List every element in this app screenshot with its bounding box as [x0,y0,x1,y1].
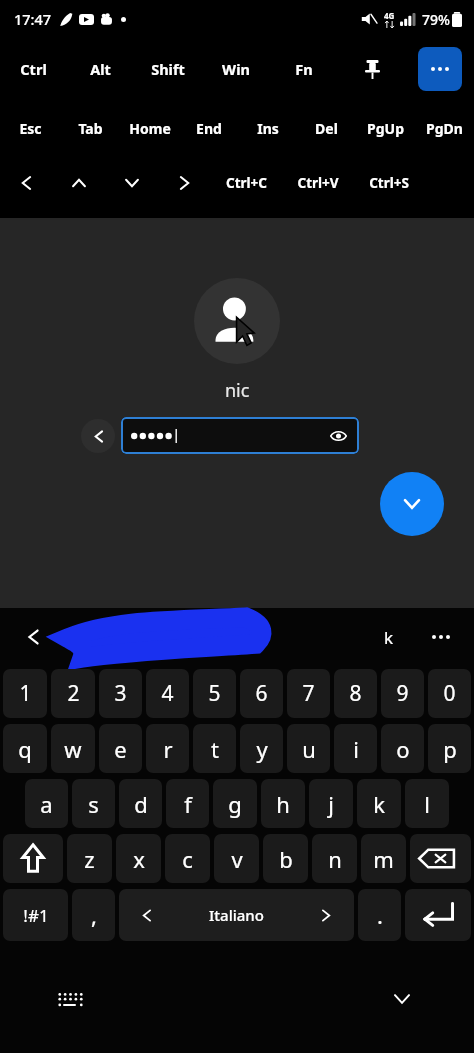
button[interactable]: Italiano [119,889,354,941]
staticText: PgUp [367,119,404,138]
button[interactable]: Switch keyboard [52,981,88,1017]
staticText: h [62,626,73,649]
button[interactable]: End [179,100,238,156]
button[interactable]: Win [202,38,270,100]
staticText: PgDn [426,119,463,138]
staticText: Tab [78,119,103,138]
button[interactable]: 6 [240,669,283,718]
staticText: u [302,734,316,764]
staticText: a [40,789,53,819]
button[interactable]: s [72,779,115,828]
button[interactable]: 2 [51,669,95,718]
button[interactable]: w [51,724,95,773]
button[interactable]: Tab [60,100,120,156]
button[interactable]: Hide keyboard [382,979,422,1019]
button[interactable]: 5 [193,669,236,718]
staticText: 3 [114,679,127,708]
staticText: y [256,734,268,764]
button[interactable]: Previous user [81,419,115,453]
button[interactable]: 8 [334,669,377,718]
button[interactable]: 3 [99,669,142,718]
button[interactable]: h [62,608,266,666]
button[interactable]: Show password [327,425,349,447]
button[interactable]: q [3,724,47,773]
button[interactable]: Submit [380,472,444,536]
button[interactable]: x [116,834,161,883]
button[interactable]: Esc [0,100,60,156]
button[interactable]: i [334,724,377,773]
staticText: 7 [302,679,315,708]
button[interactable]: 9 [381,669,424,718]
staticText: Alt [90,59,111,79]
button[interactable]: l [405,779,449,828]
button[interactable]: v [214,834,259,883]
button[interactable]: t [193,724,236,773]
button[interactable]: k [357,779,401,828]
button[interactable]: PgUp [356,100,415,156]
staticText: 79% [422,10,450,29]
button[interactable]: Shift [134,38,202,100]
button[interactable]: f [166,779,209,828]
staticText: 5 [208,679,221,708]
staticText: Home [129,119,171,138]
button[interactable]: b [263,834,308,883]
button[interactable]: 1 [3,669,47,718]
button[interactable]: a [25,779,68,828]
button[interactable]: h [261,779,305,828]
staticText: 6 [255,679,268,708]
button[interactable]: Fn [270,38,338,100]
staticText: Ctrl [20,59,47,79]
button[interactable]: c [165,834,210,883]
staticText: q [18,734,32,764]
button[interactable]: Ctrl+S [353,156,424,210]
staticText: w [64,734,82,764]
button[interactable]: !#1 [3,889,68,941]
button[interactable]: e [99,724,142,773]
button[interactable]: z [67,834,112,883]
button[interactable]: p [428,724,471,773]
staticText: 8 [349,679,362,708]
button[interactable]: More keys [418,47,462,91]
staticText: o [396,734,410,764]
button[interactable]: PgDn [415,100,474,156]
staticText: Esc [19,119,42,138]
button[interactable]: 0 [428,669,471,718]
button[interactable]: g [213,779,257,828]
staticText: l [424,789,430,819]
button[interactable]: n [312,834,357,883]
button[interactable]: m [361,834,406,883]
button[interactable]: Arrow right [158,156,211,210]
button[interactable]: Arrow down [105,156,158,210]
button[interactable]: Backspace [410,834,471,883]
button[interactable]: Ctrl [0,38,67,100]
button[interactable]: r [146,724,189,773]
button[interactable]: j [309,779,353,828]
button[interactable]: More suggestions [424,620,458,654]
button[interactable]: Alt [67,38,134,100]
button[interactable]: Back [16,620,50,654]
staticText: k [373,789,385,819]
button[interactable]: Arrow up [52,156,105,210]
button[interactable]: 4 [146,669,189,718]
button[interactable]: Home [120,100,179,156]
button[interactable]: y [240,724,283,773]
button[interactable]: , [72,889,115,941]
button[interactable]: Ins [238,100,297,156]
button[interactable]: 7 [287,669,330,718]
button[interactable]: Ctrl+V [282,156,353,210]
button[interactable]: Ctrl+C [211,156,282,210]
button[interactable]: u [287,724,330,773]
staticText: r [163,734,173,764]
button[interactable]: Arrow left [0,156,52,210]
button[interactable]: k [354,608,424,666]
button[interactable]: Del [297,100,356,156]
button[interactable]: Enter [405,889,471,941]
button[interactable]: . [358,889,401,941]
button[interactable]: Pin toolbar [338,38,406,100]
button[interactable]: o [381,724,424,773]
staticText: Ins [257,119,279,138]
button[interactable]: Shift [3,834,63,883]
staticText: 4 [161,679,174,708]
button[interactable]: d [119,779,162,828]
button[interactable]: Show password [121,417,359,454]
